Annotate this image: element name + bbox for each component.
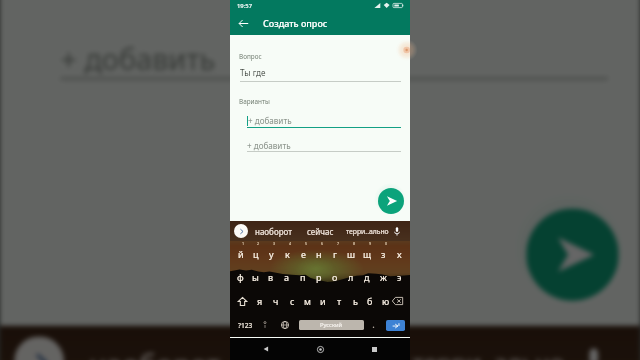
- button[interactable]: Сменить язык: [277, 313, 292, 337]
- button[interactable]: я: [253, 289, 267, 313]
- staticText: в: [268, 271, 274, 283]
- staticText: Варианты: [239, 97, 270, 106]
- button[interactable]: ю: [379, 289, 393, 313]
- button[interactable]: и: [316, 289, 330, 313]
- staticText: наоборот: [89, 344, 220, 360]
- staticText: з: [381, 248, 386, 260]
- staticText: б: [367, 295, 373, 307]
- staticText: ?123: [238, 321, 253, 330]
- staticText: сейчас: [307, 226, 334, 237]
- staticText: 8: [353, 241, 356, 246]
- button[interactable]: Голосовой ввод: [394, 227, 400, 236]
- button[interactable]: б: [363, 289, 377, 313]
- button[interactable]: к: [279, 241, 295, 265]
- button[interactable]: ?123: [234, 313, 256, 337]
- button[interactable]: х: [391, 241, 407, 265]
- staticText: ь: [353, 295, 358, 307]
- button[interactable]: у: [263, 241, 279, 265]
- button[interactable]: ж: [375, 265, 391, 289]
- button[interactable]: Отправить: [378, 188, 404, 214]
- button[interactable]: в: [263, 265, 279, 289]
- button[interactable]: Русский: [299, 320, 364, 330]
- button[interactable]: ы: [248, 265, 263, 289]
- button[interactable]: а: [279, 265, 295, 289]
- staticText: т: [337, 295, 342, 307]
- staticText: ч: [273, 295, 279, 307]
- button[interactable]: о: [327, 265, 343, 289]
- button[interactable]: г: [327, 241, 343, 265]
- button[interactable]: з: [375, 241, 391, 265]
- staticText: 4: [289, 241, 292, 246]
- button[interactable]: сейчас: [296, 221, 344, 241]
- button[interactable]: ь: [348, 289, 362, 313]
- staticText: Русский: [320, 321, 343, 329]
- button[interactable]: н: [311, 241, 327, 265]
- staticText: + добавить: [247, 140, 291, 151]
- button[interactable]: е: [295, 241, 311, 265]
- staticText: 2: [257, 241, 260, 246]
- button[interactable]: р: [311, 265, 327, 289]
- button[interactable]: Ещё подсказки: [14, 336, 64, 360]
- button[interactable]: + добавить: [60, 38, 608, 77]
- button[interactable]: с: [285, 289, 299, 313]
- button[interactable]: Заглавные буквы: [233, 289, 251, 313]
- staticText: Ты где: [240, 67, 266, 78]
- staticText: э: [397, 271, 402, 283]
- button[interactable]: Назад: [239, 338, 293, 360]
- button[interactable]: Главный экран: [293, 338, 347, 360]
- staticText: ы: [252, 271, 259, 283]
- button[interactable]: Голосовой ввод: [583, 347, 604, 360]
- button[interactable]: ф: [233, 265, 248, 289]
- button[interactable]: Недавние приложения: [347, 338, 401, 360]
- button[interactable]: ц: [248, 241, 263, 265]
- button[interactable]: + добавить: [247, 115, 401, 126]
- button[interactable]: + добавить: [247, 140, 401, 151]
- staticText: ю: [382, 295, 390, 307]
- staticText: д: [364, 271, 370, 283]
- button[interactable]: [367, 313, 379, 337]
- staticText: и: [320, 295, 326, 307]
- button[interactable]: Назад: [231, 11, 255, 35]
- button[interactable]: щ: [359, 241, 375, 265]
- staticText: л: [348, 271, 354, 283]
- button[interactable]: Ещё подсказки: [234, 224, 248, 238]
- button[interactable]: наоборот: [249, 221, 297, 241]
- button[interactable]: Эмодзи: [258, 313, 271, 337]
- staticText: Создать опрос: [263, 17, 328, 29]
- staticText: ц: [253, 248, 259, 260]
- button[interactable]: т: [332, 289, 346, 313]
- button[interactable]: терри..ально: [402, 326, 572, 360]
- button[interactable]: э: [391, 265, 407, 289]
- staticText: щ: [363, 248, 372, 260]
- button[interactable]: м: [300, 289, 314, 313]
- button[interactable]: й: [233, 241, 248, 265]
- staticText: 19:57: [237, 2, 253, 10]
- button[interactable]: сейчас: [235, 326, 405, 360]
- button[interactable]: Удалить: [388, 289, 406, 313]
- staticText: х: [397, 248, 402, 260]
- staticText: й: [238, 248, 244, 260]
- staticText: + добавить: [248, 115, 292, 126]
- button[interactable]: Отправить: [526, 208, 619, 301]
- button[interactable]: терри..ально: [343, 221, 391, 241]
- staticText: е: [301, 248, 306, 260]
- staticText: г: [333, 248, 337, 260]
- button[interactable]: ш: [343, 241, 359, 265]
- button[interactable]: Ты где: [240, 67, 401, 78]
- staticText: сейчас: [274, 344, 370, 360]
- button[interactable]: л: [343, 265, 359, 289]
- button[interactable]: п: [295, 265, 311, 289]
- button[interactable]: д: [359, 265, 375, 289]
- button[interactable]: наоборот: [68, 326, 238, 360]
- button[interactable]: ч: [269, 289, 283, 313]
- staticText: м: [304, 295, 311, 307]
- staticText: наоборот: [255, 226, 292, 237]
- staticText: 7: [337, 241, 340, 246]
- staticText: о: [332, 271, 338, 283]
- button[interactable]: Ввод: [386, 320, 405, 331]
- staticText: 0: [385, 241, 388, 246]
- staticText: терри..ально: [412, 347, 565, 360]
- staticText: я: [257, 295, 263, 307]
- staticText: п: [300, 271, 306, 283]
- staticText: 9: [369, 241, 372, 246]
